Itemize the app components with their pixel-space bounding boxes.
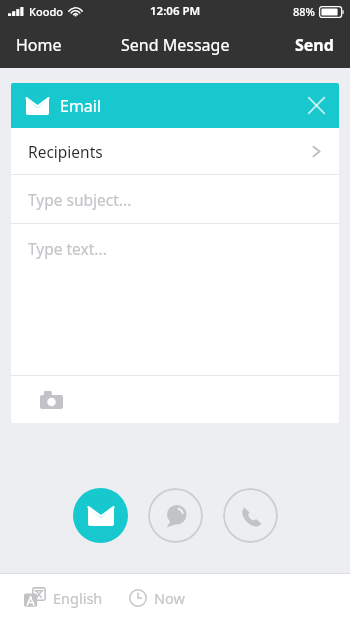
- staticText: Type text...: [28, 238, 107, 259]
- staticText: 12:06 PM: [150, 3, 201, 19]
- staticText: Send Message: [121, 34, 230, 56]
- button[interactable]: Attach photo: [34, 385, 69, 415]
- button[interactable]: Message: [148, 488, 203, 543]
- staticText: Koodo: [29, 4, 63, 19]
- staticText: Email: [60, 95, 102, 117]
- button[interactable]: Send: [279, 22, 350, 68]
- button[interactable]: Home: [0, 22, 78, 68]
- button[interactable]: Now: [125, 580, 189, 616]
- staticText: Recipients: [28, 141, 103, 162]
- button[interactable]: Close: [294, 83, 339, 128]
- button[interactable]: Type subject...: [11, 175, 339, 223]
- staticText: 88%: [293, 4, 315, 19]
- button[interactable]: Email: [73, 488, 128, 543]
- button[interactable]: English: [0, 579, 111, 617]
- button[interactable]: Type text...: [11, 224, 339, 375]
- staticText: Type subject...: [28, 189, 132, 210]
- button[interactable]: Call: [223, 488, 278, 543]
- staticText: English: [53, 588, 103, 608]
- staticText: Home: [16, 34, 62, 56]
- staticText: Now: [154, 588, 185, 608]
- button[interactable]: Recipients: [11, 128, 339, 174]
- staticText: Send: [295, 34, 334, 56]
